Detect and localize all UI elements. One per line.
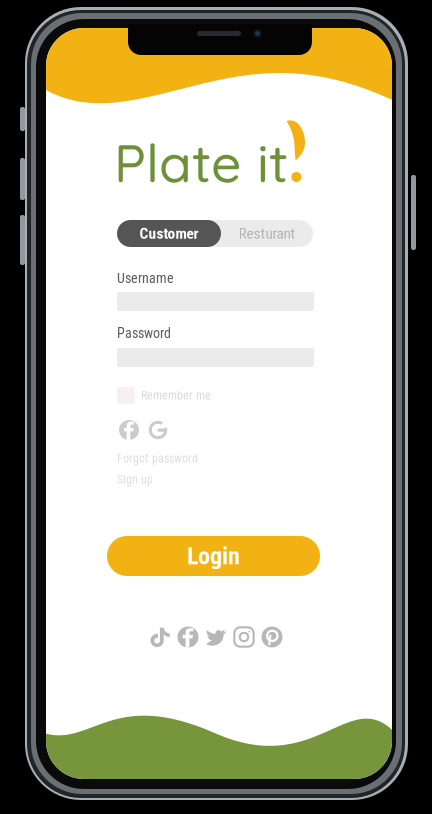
button[interactable]: Customer xyxy=(117,220,221,247)
button[interactable]: Forgot password xyxy=(117,452,314,465)
button[interactable]: Sign up xyxy=(117,473,314,486)
staticText: Username xyxy=(117,270,174,286)
button[interactable]: Instagram xyxy=(233,626,254,647)
button[interactable]: Twitter xyxy=(205,626,226,647)
button[interactable]: Sign in with Google xyxy=(148,420,168,440)
button[interactable]: Remember me xyxy=(117,387,314,404)
staticText: Customer xyxy=(139,224,198,242)
button[interactable]: Login xyxy=(107,536,320,576)
button[interactable]: Pinterest xyxy=(261,626,282,647)
staticText: Plate it xyxy=(114,129,288,196)
staticText: Sign up xyxy=(117,472,153,487)
staticText: Password xyxy=(117,325,171,341)
button[interactable]: Resturant xyxy=(221,220,313,247)
button[interactable]: Sign in with Facebook xyxy=(119,420,139,440)
staticText: Login xyxy=(187,542,240,570)
staticText: Resturant xyxy=(238,224,295,242)
staticText: Forgot password xyxy=(117,451,198,466)
staticText: Remember me xyxy=(141,388,211,403)
button[interactable]: Facebook xyxy=(177,626,198,647)
button[interactable]: TikTok xyxy=(150,627,170,647)
